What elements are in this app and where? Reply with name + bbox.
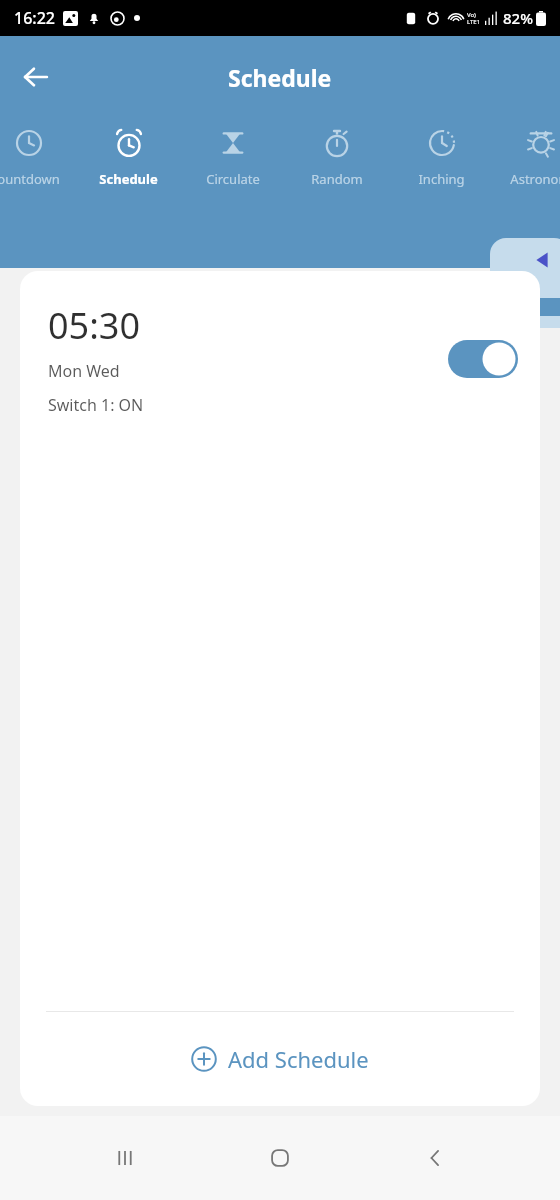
staticText: ountdown xyxy=(0,170,60,188)
button[interactable]: Circulate xyxy=(181,118,285,222)
staticText: 82% xyxy=(503,8,533,28)
staticText: 16:22 xyxy=(14,7,55,29)
staticText: 05:30 xyxy=(48,301,141,350)
staticText: Vo) LTE1 xyxy=(467,11,481,26)
button[interactable]: Home xyxy=(250,1128,310,1188)
button[interactable]: Back xyxy=(405,1128,465,1188)
button[interactable]: Toggle schedule xyxy=(448,340,518,378)
button[interactable]: 05:30 xyxy=(20,271,540,426)
button[interactable]: Random xyxy=(285,118,389,222)
staticText: Schedule xyxy=(228,62,332,93)
staticText: Switch 1: ON xyxy=(48,394,144,416)
button[interactable]: Back xyxy=(10,51,62,103)
button[interactable]: ountdown xyxy=(0,118,80,222)
staticText: Add Schedule xyxy=(228,1044,369,1074)
staticText: Schedule xyxy=(99,170,158,188)
staticText: Mon Wed xyxy=(48,360,120,382)
button[interactable]: Schedule xyxy=(76,118,180,222)
button[interactable]: Inching xyxy=(389,118,493,222)
staticText: Astronom xyxy=(510,170,560,188)
button[interactable]: Astronom xyxy=(488,118,560,222)
staticText: Circulate xyxy=(206,170,260,188)
button[interactable]: Recent apps xyxy=(95,1128,155,1188)
staticText: Inching xyxy=(418,170,465,188)
staticText: Random xyxy=(311,170,363,188)
button[interactable]: Add Schedule xyxy=(20,1012,540,1106)
